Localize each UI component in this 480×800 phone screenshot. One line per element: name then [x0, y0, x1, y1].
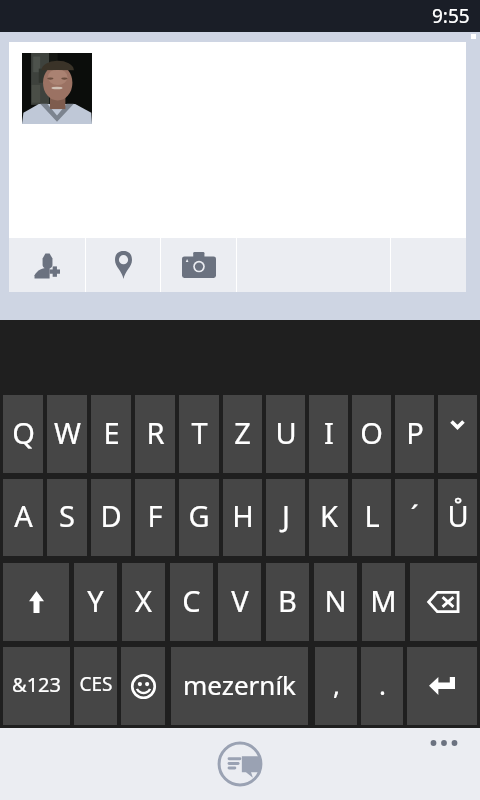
staticText: . — [379, 667, 386, 702]
button[interactable]: M — [362, 563, 405, 641]
button[interactable]: D — [91, 479, 131, 556]
button[interactable]: P — [395, 395, 434, 473]
staticText: S — [59, 496, 75, 535]
button[interactable]: J — [266, 479, 305, 556]
button[interactable]: C — [170, 563, 213, 641]
staticText: X — [135, 581, 152, 620]
button[interactable]: Ů — [438, 479, 477, 556]
button[interactable]: T — [179, 395, 219, 473]
button[interactable]: O — [352, 395, 391, 473]
button[interactable]: . — [361, 647, 403, 725]
staticText: D — [100, 496, 122, 535]
staticText: C — [182, 581, 201, 620]
button[interactable]: L — [352, 479, 391, 556]
staticText: , — [333, 667, 340, 702]
staticText: I — [324, 413, 334, 452]
button[interactable]: A — [3, 479, 43, 556]
button[interactable]: Add person — [9, 238, 85, 292]
staticText: 9:55 — [432, 3, 470, 29]
staticText: Z — [234, 413, 251, 452]
button[interactable]: E — [91, 395, 131, 473]
staticText: B — [278, 581, 297, 620]
button[interactable]: W — [47, 395, 87, 473]
staticText: G — [188, 496, 210, 535]
staticText: M — [370, 581, 397, 620]
button[interactable]: I — [309, 395, 348, 473]
staticText: CES — [79, 671, 113, 697]
staticText: H — [232, 496, 254, 535]
staticText: &123 — [12, 671, 61, 698]
staticText: L — [364, 496, 380, 535]
button[interactable]: F — [135, 479, 175, 556]
button[interactable]: X — [122, 563, 165, 641]
staticText: K — [320, 496, 338, 535]
button[interactable]: Y — [74, 563, 117, 641]
staticText: F — [147, 496, 163, 535]
staticText: Ů — [447, 496, 469, 535]
button[interactable]: Shift — [3, 563, 69, 641]
staticText: V — [231, 581, 249, 620]
button[interactable]: N — [314, 563, 357, 641]
button[interactable]: Enter — [407, 647, 477, 725]
staticText: J — [282, 496, 290, 535]
staticText: Y — [87, 581, 104, 620]
staticText: mezerník — [183, 667, 296, 702]
button[interactable]: B — [266, 563, 309, 641]
staticText: W — [54, 413, 81, 452]
staticText: ´ — [410, 496, 419, 535]
button[interactable]: mezerník — [171, 647, 308, 725]
button[interactable]: Q — [3, 395, 43, 473]
staticText: P — [406, 413, 424, 452]
button[interactable]: Location — [86, 238, 160, 292]
button[interactable]: V — [218, 563, 261, 641]
button[interactable]: Hide keyboard — [438, 395, 477, 473]
staticText: E — [103, 413, 120, 452]
button[interactable]: CES — [74, 647, 117, 725]
button[interactable]: H — [223, 479, 262, 556]
staticText: O — [360, 413, 383, 452]
button[interactable]: More options — [419, 728, 469, 757]
button[interactable]: S — [47, 479, 87, 556]
button[interactable]: R — [135, 395, 175, 473]
button[interactable]: Camera — [161, 238, 236, 292]
staticText: Q — [12, 413, 35, 452]
staticText: T — [191, 413, 208, 452]
staticText: N — [324, 581, 347, 620]
button[interactable]: G — [179, 479, 219, 556]
button[interactable]: K — [309, 479, 348, 556]
button[interactable]: Backspace — [410, 563, 477, 641]
button[interactable]: U — [266, 395, 305, 473]
button[interactable]: , — [315, 647, 357, 725]
button[interactable]: Messages — [216, 740, 264, 788]
staticText: A — [14, 496, 33, 535]
staticText: R — [146, 413, 165, 452]
button[interactable]: ´ — [395, 479, 434, 556]
button[interactable]: &123 — [3, 647, 70, 725]
button[interactable]: Emoji — [121, 647, 165, 725]
staticText: U — [275, 413, 297, 452]
button[interactable]: Z — [223, 395, 262, 473]
